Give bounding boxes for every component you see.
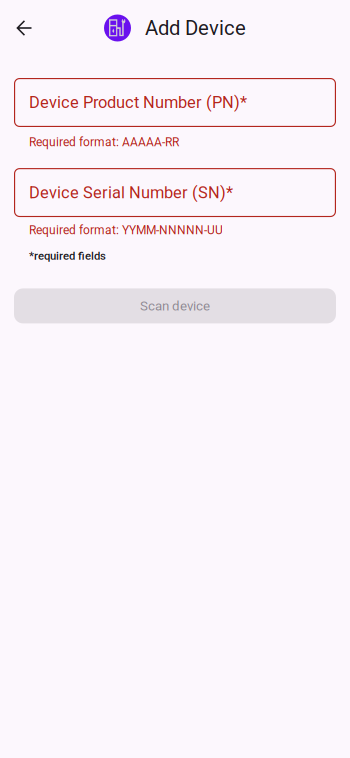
staticText: *required fields [29,249,106,262]
staticText: Add Device [145,16,246,40]
staticText: Scan device [140,298,210,314]
staticText: Required format: AAAAA-RR [29,135,179,149]
button[interactable]: Scan device [14,288,336,323]
staticText: Required format: YYMM-NNNNN-UU [29,223,223,237]
staticText: Device Product Number (PN)* [29,93,247,112]
staticText: Device Serial Number (SN)* [29,183,233,202]
button[interactable]: Back [0,4,48,52]
